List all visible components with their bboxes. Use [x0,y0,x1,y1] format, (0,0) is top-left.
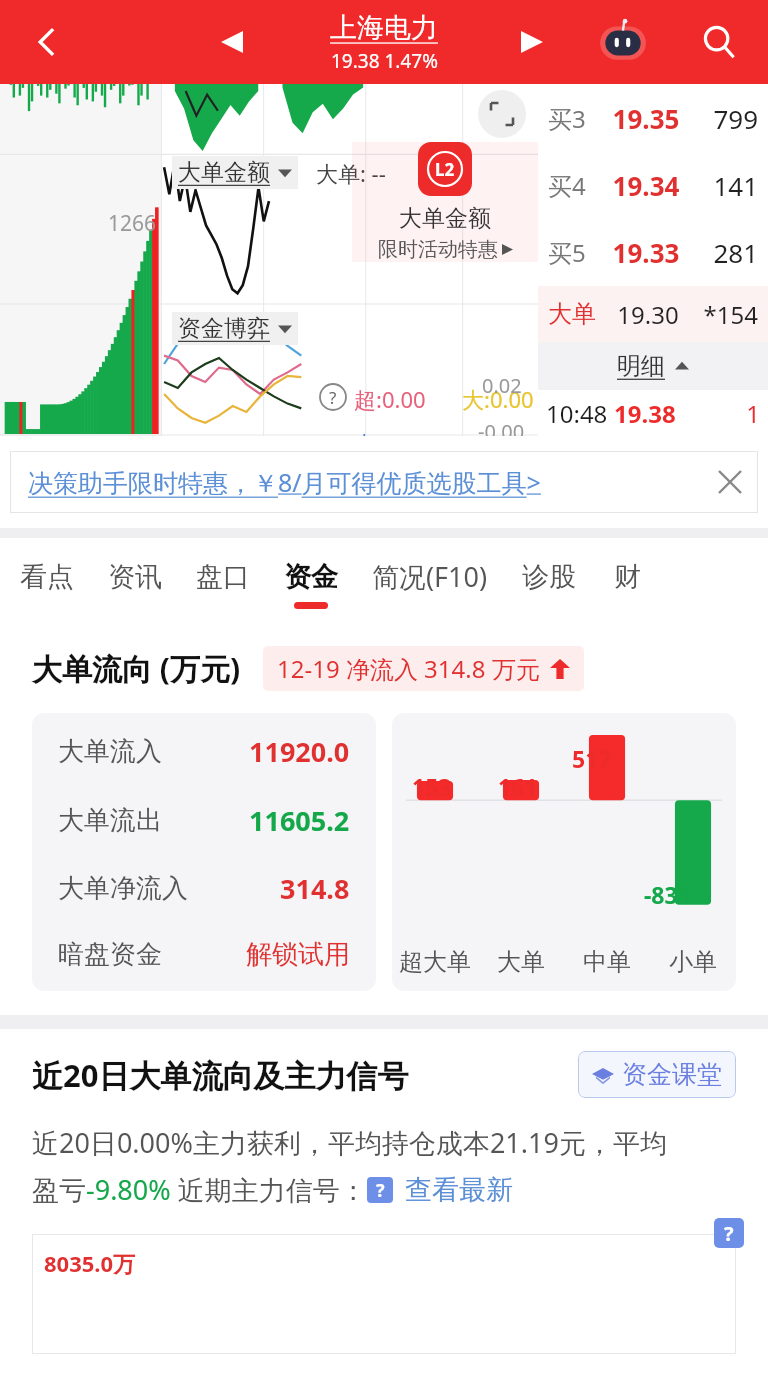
staticText: 诊股 [522,560,576,594]
button[interactable]: 大单净流入 [58,870,350,907]
staticText: 买4 [548,169,606,202]
staticText: 1266 [108,209,157,238]
staticText: 资讯 [108,560,162,594]
button[interactable]: 资讯 [108,538,162,630]
staticText: -0.00 [478,418,525,445]
staticText: 近20日0.00%主力获利，平均持仓成本21.19元，平均 [32,1124,667,1161]
button[interactable]: 买4 [548,152,758,219]
staticText: 买5 [548,236,606,269]
button[interactable]: Close banner [706,458,754,506]
staticText: 10:48 [546,397,608,430]
button[interactable]: 12-19 净流入 314.8 万元 [277,652,570,685]
staticText: 19.38 1.47% [331,48,438,74]
staticText: 281 [686,235,758,270]
button[interactable]: Next stock [508,18,556,66]
staticText: 暗盘资金 [58,938,162,971]
staticText: L2 [435,158,455,181]
staticText: -831 [644,879,691,910]
staticText: 盘口 [196,560,250,594]
button[interactable]: 查看最新 [405,1173,513,1207]
button[interactable]: 资金 [284,538,338,630]
staticText: 8035.0万 [44,1248,136,1278]
button[interactable]: 153 [392,713,736,991]
staticText: 19.34 [606,168,686,203]
staticText: ? [376,1178,385,1203]
staticText: 限时活动特惠 [378,237,498,262]
staticText: 决策助手限时特惠，￥8/月可得优质选股工具> [28,465,706,499]
button[interactable]: Previous stock [208,18,256,66]
staticText: 资金课堂 [622,1059,722,1090]
button[interactable]: Search [690,13,748,71]
staticText: 11605.2 [249,802,350,839]
staticText: 12-19 净流入 314.8 万元 [277,652,540,685]
staticText: 查看最新 [405,1173,513,1207]
staticText: 近20日大单流向及主力信号 [32,1054,409,1096]
staticText: 超大单 [399,947,471,977]
button[interactable]: 暗盘资金 [58,938,350,971]
staticText: 1 [676,397,760,430]
staticText: 看点 [20,560,74,594]
staticText: 19.38 [614,397,676,430]
staticText: 买3 [548,102,606,135]
button[interactable]: 大单流入 [58,733,350,770]
staticText: 财 [614,560,641,594]
staticText: 中:0.01 [354,428,426,458]
button[interactable]: L2 [352,142,538,262]
staticText: ? [329,386,337,409]
button[interactable]: Back [20,15,74,69]
button[interactable]: 买5 [548,219,758,286]
staticText: 19.33 [606,235,686,270]
staticText: 大单净流入 [58,872,188,905]
staticText: 上海电力 [330,11,438,45]
button[interactable]: 看点 [20,538,74,630]
button[interactable]: 买3 [548,85,758,152]
staticText: 中单 [583,947,631,977]
staticText: 小:-0.02 [354,472,433,502]
staticText: 799 [686,101,758,136]
button[interactable]: Fullscreen chart [478,90,526,138]
button[interactable]: AI assistant [592,11,654,73]
button[interactable]: 盘口 [196,538,250,630]
staticText: 盈亏-9.80% 近期主力信号： [32,1171,367,1208]
staticText: 简况(F10) [372,558,488,595]
staticText: 资金博弈 [178,314,270,343]
staticText: 大单流入 [58,735,162,768]
staticText: 19.30 [606,298,690,331]
button[interactable]: 资金课堂 [592,1059,722,1090]
button[interactable]: 诊股 [522,538,576,630]
staticText: 资金 [284,560,338,594]
staticText: 11920.0 [249,733,350,770]
button[interactable]: 资金博弈 [178,314,292,343]
button[interactable]: 大单 [548,286,758,342]
staticText: 超:0.00 [354,384,426,414]
button[interactable]: Help [318,382,348,412]
button[interactable]: 决策助手限时特惠，￥8/月可得优质选股工具> [10,451,758,513]
staticText: 解锁试用 [246,938,350,971]
staticText: 大单金额 [178,158,270,187]
button[interactable]: 10:48 [546,390,760,436]
button[interactable]: 财 [610,538,644,630]
staticText: 517 [572,743,612,774]
staticText: 153 [412,771,452,802]
button[interactable]: Signal help [367,1177,393,1203]
button[interactable]: 上海电力 [330,11,438,74]
staticText: 大单 [548,299,606,329]
staticText: 19.35 [606,101,686,136]
staticText: 大:0.00 [462,384,534,414]
button[interactable]: 大单流出 [58,802,350,839]
staticText: 141 [686,168,758,203]
staticText: 大单金额 [399,204,491,233]
staticText: 314.8 [280,870,350,907]
staticText: 大单: -- [316,158,386,188]
staticText: 161 [498,771,538,802]
staticText: 0.02 [482,372,522,399]
staticText: ? [724,1220,734,1247]
button[interactable]: 明细 [538,342,768,390]
staticText: 大单流出 [58,804,162,837]
staticText: 大单流向 (万元) [32,648,241,689]
staticText: *154 [690,298,758,331]
button[interactable]: 简况(F10) [372,538,488,630]
button[interactable]: Chart help [714,1218,744,1248]
button[interactable]: 大单金额 [178,158,292,187]
staticText: 大单 [497,947,545,977]
